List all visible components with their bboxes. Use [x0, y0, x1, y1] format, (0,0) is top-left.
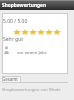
staticText: 5.00 / 5.00	[3, 18, 28, 25]
button[interactable]: Shopbewertungen	[0, 0, 74, 10]
staticText: Shopbewertungen	[2, 2, 47, 9]
staticText: vor einem Jahr	[17, 49, 47, 55]
staticText: Sehr gut	[3, 36, 23, 43]
staticText: Shopbewertungen von Mode	[2, 86, 61, 92]
staticText: Gesamt 1	[2, 76, 21, 83]
button[interactable]: Gesamt 1	[2, 76, 21, 83]
